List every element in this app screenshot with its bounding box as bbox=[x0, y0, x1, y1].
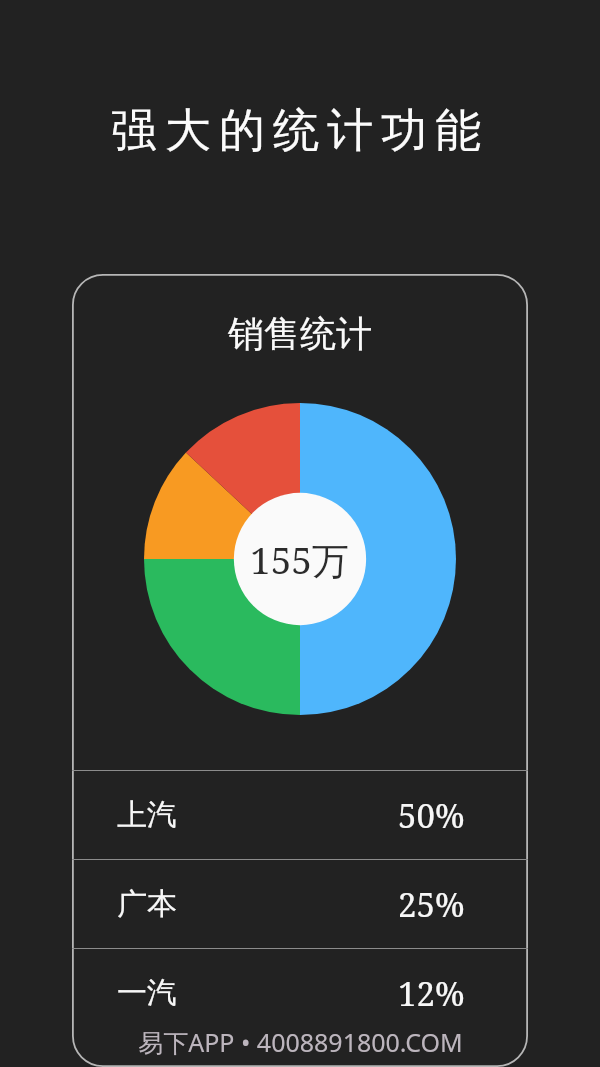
staticText: 易下APP • 4008891800.COM bbox=[138, 1025, 463, 1059]
staticText: 155万 bbox=[250, 534, 350, 585]
staticText: 12% bbox=[398, 971, 465, 1016]
staticText: 25% bbox=[398, 882, 465, 927]
staticText: 上汽 bbox=[117, 796, 177, 834]
button[interactable]: 上汽 bbox=[72, 770, 528, 859]
button[interactable]: 一汽 bbox=[72, 948, 528, 1037]
staticText: 广本 bbox=[117, 885, 177, 923]
staticText: 一汽 bbox=[117, 974, 177, 1012]
button[interactable]: 广本 bbox=[72, 859, 528, 948]
staticText: 销售统计 bbox=[72, 311, 528, 356]
staticText: 强大的统计功能 bbox=[0, 102, 600, 160]
staticText: 50% bbox=[398, 793, 465, 838]
